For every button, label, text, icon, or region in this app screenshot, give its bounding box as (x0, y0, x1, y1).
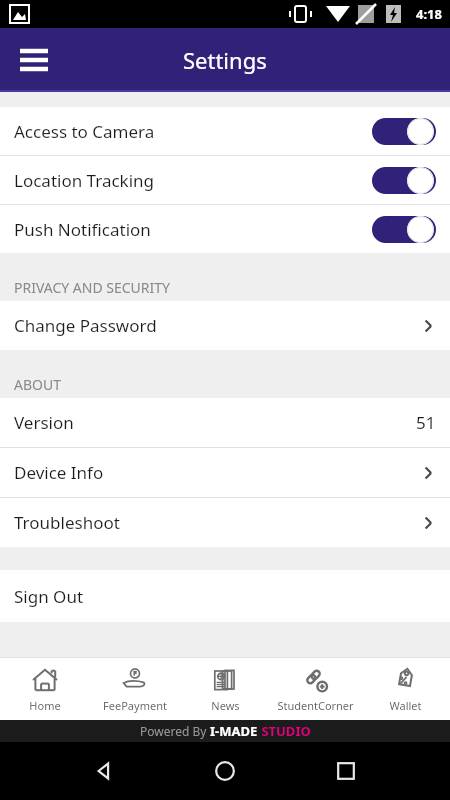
button[interactable]: Home (208, 754, 242, 788)
staticText: StudentCorner (277, 698, 354, 713)
staticText: ABOUT (14, 375, 61, 394)
staticText: Troubleshoot (14, 511, 120, 534)
button[interactable]: FeePayment (90, 658, 180, 720)
button[interactable]: Device Info (0, 448, 450, 497)
button[interactable]: Location Tracking (0, 156, 450, 204)
staticText: Wallet (389, 698, 422, 713)
staticText: PRIVACY AND SECURITY (14, 278, 171, 297)
button[interactable]: News (180, 658, 270, 720)
staticText: Home (29, 698, 61, 713)
staticText: Settings (183, 45, 267, 75)
button[interactable]: Back (87, 754, 121, 788)
staticText: Powered By (140, 723, 210, 739)
staticText: Device Info (14, 461, 104, 484)
staticText: Access to Camera (14, 120, 155, 143)
staticText: I-MADE (210, 722, 258, 740)
button[interactable]: Access to Camera (0, 107, 450, 155)
staticText: FeePayment (103, 698, 167, 713)
staticText: Version (14, 411, 74, 434)
button[interactable]: Recent apps (329, 754, 363, 788)
staticText: Location Tracking (14, 169, 155, 192)
staticText: 4:18 (416, 5, 442, 23)
staticText: Sign Out (14, 585, 84, 608)
staticText: STUDIO (258, 722, 311, 740)
button[interactable]: Version (0, 398, 450, 447)
button[interactable]: Troubleshoot (0, 498, 450, 547)
button[interactable]: Wallet (360, 658, 450, 720)
staticText: Push Notification (14, 218, 151, 241)
button[interactable]: Home (0, 658, 90, 720)
staticText: News (211, 698, 240, 713)
button[interactable]: Change Password (0, 301, 450, 350)
button[interactable]: Push Notification (0, 205, 450, 253)
staticText: Change Password (14, 314, 157, 337)
staticText: 51 (416, 411, 436, 434)
button[interactable]: Sign Out (0, 570, 450, 622)
button[interactable]: StudentCorner (270, 658, 360, 720)
button[interactable]: Open navigation menu (12, 38, 56, 82)
